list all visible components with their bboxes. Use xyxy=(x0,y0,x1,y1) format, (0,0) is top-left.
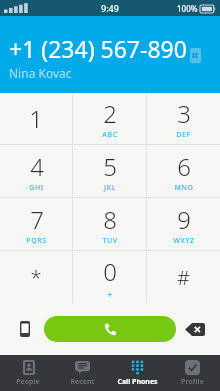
button[interactable]: Call on device xyxy=(8,312,42,346)
button[interactable]: Call Phones xyxy=(110,355,165,391)
staticText: 2 xyxy=(103,97,117,130)
staticText: 0 xyxy=(103,255,117,288)
staticText: + xyxy=(107,288,113,300)
staticText: 3 xyxy=(177,97,191,130)
button[interactable]: 2 xyxy=(73,93,146,144)
staticText: 9 xyxy=(177,203,191,236)
button[interactable]: 0 xyxy=(73,251,146,303)
button[interactable]: Delete xyxy=(178,312,212,346)
button[interactable]: 8 xyxy=(73,198,146,250)
staticText: Recent xyxy=(70,377,95,387)
staticText: ABC xyxy=(102,130,118,140)
staticText: Nina Kovac xyxy=(9,65,72,81)
staticText: 6 xyxy=(177,150,191,183)
staticText: Call Phones xyxy=(117,377,158,387)
staticText: 1 xyxy=(29,102,43,135)
staticText: # xyxy=(177,264,190,291)
button[interactable]: 7 xyxy=(0,198,72,250)
button[interactable]: Call xyxy=(44,316,176,342)
staticText: PQRS xyxy=(26,236,47,246)
staticText: JKL xyxy=(104,183,116,193)
button[interactable]: Profile xyxy=(165,355,220,391)
staticText: 5 xyxy=(103,150,117,183)
button[interactable]: Recent xyxy=(55,355,110,391)
button[interactable]: # xyxy=(147,251,220,303)
staticText: People xyxy=(16,377,40,387)
staticText: MNO xyxy=(174,183,194,193)
staticText: 8 xyxy=(103,203,117,236)
staticText: 100% xyxy=(177,3,198,14)
staticText: GHI xyxy=(29,183,44,193)
button[interactable]: 6 xyxy=(147,145,220,197)
staticText: DEF xyxy=(176,130,191,140)
staticText: TUV xyxy=(102,236,118,246)
staticText: Profile xyxy=(181,377,204,387)
button[interactable]: 4 xyxy=(0,145,72,197)
staticText: +1 (234) 567-890 xyxy=(9,33,187,64)
button[interactable]: 1 xyxy=(0,93,72,144)
staticText: 4 xyxy=(30,150,44,183)
button[interactable]: * xyxy=(0,251,72,303)
button[interactable]: 3 xyxy=(147,93,220,144)
button[interactable]: People xyxy=(0,355,55,391)
staticText: 7 xyxy=(30,203,44,236)
button[interactable]: 9 xyxy=(147,198,220,250)
button[interactable]: Add contact xyxy=(182,42,208,68)
staticText: * xyxy=(30,264,42,291)
staticText: WXYZ xyxy=(173,236,195,246)
staticText: 9:49 xyxy=(101,2,119,14)
button[interactable]: 5 xyxy=(73,145,146,197)
